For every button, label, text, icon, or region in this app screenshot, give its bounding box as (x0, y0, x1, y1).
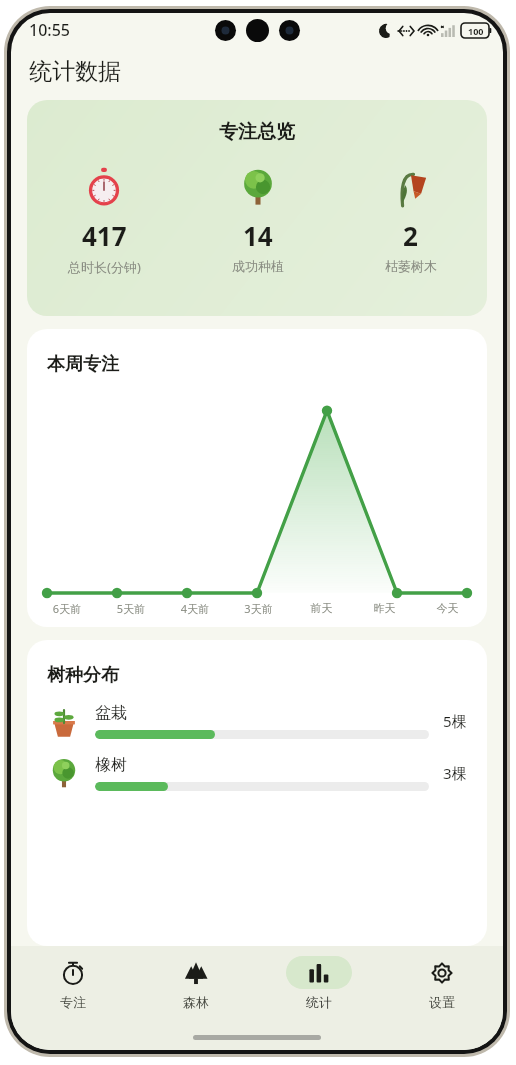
staticText: 100 (468, 25, 484, 37)
staticText: 树种分布 (47, 664, 119, 687)
staticText: 成功种植 (232, 258, 284, 274)
staticText: 4天前 (163, 601, 227, 616)
other: 统计 (307, 961, 331, 985)
staticText: 3棵 (443, 763, 467, 783)
staticText: 设置 (429, 994, 455, 1010)
staticText: 橡树 (95, 755, 127, 775)
staticText: 6天前 (35, 601, 99, 616)
staticText: 统计 (306, 994, 332, 1010)
staticText: 3天前 (227, 601, 290, 616)
staticText: 专注 (60, 994, 86, 1010)
staticText: 14 (243, 218, 273, 253)
staticText: 10:55 (29, 19, 70, 41)
other: 设置 (430, 961, 454, 985)
other: 森林 (184, 961, 208, 985)
staticText: 2 (403, 218, 418, 253)
button[interactable]: 橡树 (47, 755, 467, 791)
staticText: 417 (82, 218, 127, 253)
staticText: 本周专注 (47, 353, 119, 376)
staticText: 5天前 (99, 601, 163, 616)
staticText: 统计数据 (29, 57, 121, 86)
staticText: 森林 (183, 994, 209, 1010)
staticText: 今天 (416, 601, 479, 615)
button[interactable]: 盆栽 (47, 703, 467, 739)
staticText: 专注总览 (219, 120, 295, 144)
button[interactable]: 统计 (257, 956, 380, 1010)
staticText: 前天 (290, 601, 353, 615)
button[interactable]: 森林 (134, 956, 257, 1010)
staticText: 5棵 (443, 711, 467, 731)
button[interactable]: 专注 (11, 956, 134, 1010)
other: 专注 (61, 961, 85, 985)
staticText: 枯萎树木 (385, 258, 437, 274)
staticText: 昨天 (353, 601, 416, 615)
button[interactable]: 设置 (380, 956, 503, 1010)
staticText: 总时长(分钟) (68, 258, 141, 276)
staticText: 盆栽 (95, 703, 127, 723)
